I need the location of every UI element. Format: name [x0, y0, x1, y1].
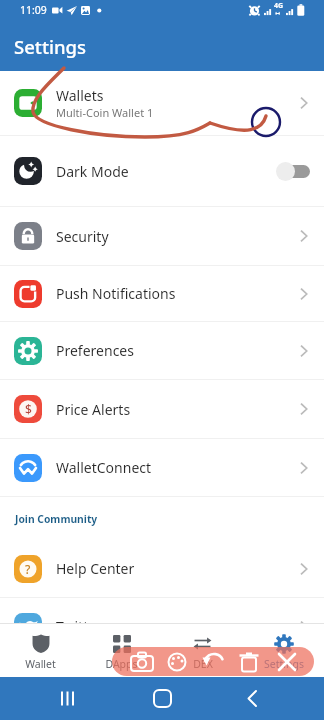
button[interactable]: WalletConnect [0, 439, 324, 496]
staticText: DEX [193, 657, 213, 671]
staticText: Dark Mode [56, 162, 276, 181]
staticText: ? [25, 561, 31, 577]
button[interactable]: ? [0, 540, 324, 597]
staticText: 4G [274, 1, 284, 11]
button[interactable]: Settings [243, 624, 324, 677]
staticText: DApps [105, 657, 138, 671]
button[interactable]: Twitter [0, 598, 324, 623]
staticText: Push Notifications [56, 284, 176, 303]
button[interactable]: Wallet [0, 624, 81, 677]
other: Dark mode toggle [276, 161, 310, 181]
button[interactable]: DEX [162, 624, 243, 677]
button[interactable]: $ [0, 380, 324, 438]
staticText: Preferences [56, 341, 134, 360]
button[interactable]: Security [0, 207, 324, 265]
staticText: 11:09 [20, 3, 47, 17]
staticText: Price Alerts [56, 400, 131, 419]
button[interactable]: Preferences [0, 322, 324, 379]
staticText: Settings [14, 34, 87, 59]
staticText: Join Community [15, 512, 98, 526]
staticText: Security [56, 227, 109, 246]
staticText: $ [25, 401, 32, 417]
button[interactable]: DApps [81, 624, 162, 677]
staticText: Multi-Coin Wallet 1 [56, 105, 154, 120]
staticText: Wallet [25, 657, 56, 671]
staticText: Twitter [56, 617, 102, 623]
button[interactable]: Dark Mode [0, 136, 324, 206]
staticText: Wallets [56, 86, 104, 105]
button[interactable]: Wallets [0, 71, 324, 135]
staticText: Help Center [56, 559, 135, 578]
staticText: WalletConnect [56, 458, 152, 477]
staticText: Settings [264, 657, 304, 671]
button[interactable]: Push Notifications [0, 266, 324, 321]
